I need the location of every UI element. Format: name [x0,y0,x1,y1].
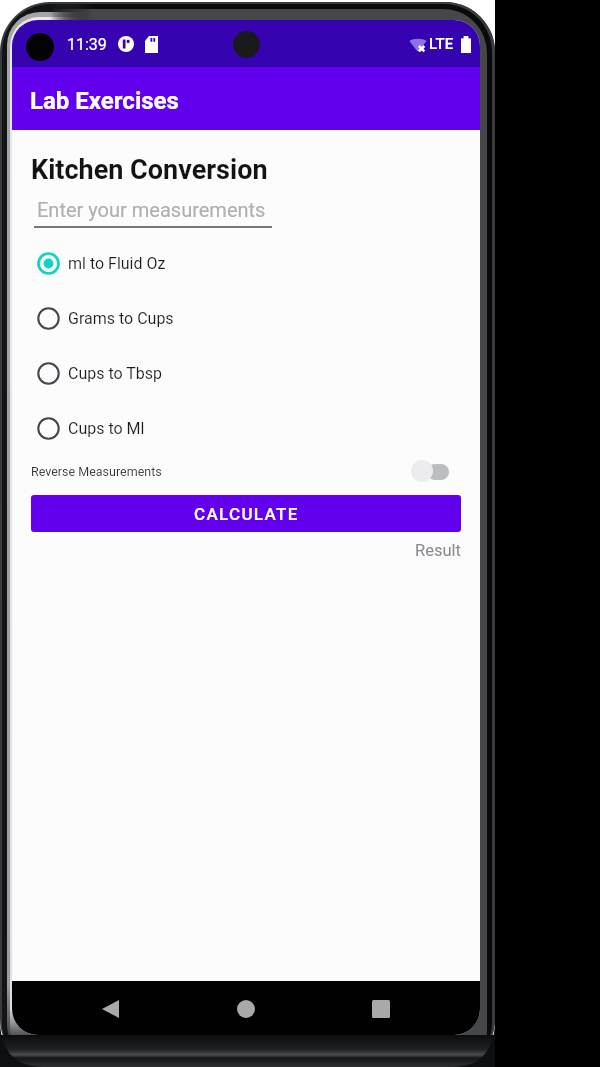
button[interactable]: Recents [358,986,404,1032]
button[interactable]: Lab Exercises [12,67,480,130]
staticText: Reverse Measurements [31,464,162,479]
button[interactable]: Reverse measurements toggle [411,459,449,483]
staticText: Result [12,541,461,560]
button[interactable]: Enter your measurements [34,198,272,228]
button[interactable]: ml to Fluid Oz [12,236,480,291]
staticText: Cups to Tbsp [68,364,163,383]
staticText: Enter your measurements [37,198,266,221]
staticText: LTE [429,35,454,53]
staticText: 11:39 [67,35,107,54]
staticText: CALCULATE [194,504,299,524]
staticText: Grams to Cups [68,309,174,328]
button[interactable]: Back [87,986,133,1032]
staticText: Cups to Ml [68,419,145,438]
staticText: Kitchen Conversion [31,154,268,186]
button[interactable]: Cups to Tbsp [12,346,480,401]
button[interactable]: CALCULATE [31,495,461,532]
staticText: Lab Exercises [30,87,179,115]
button[interactable]: Cups to Ml [12,401,480,456]
button[interactable]: Home [223,986,269,1032]
staticText: ml to Fluid Oz [68,254,166,273]
button[interactable]: Grams to Cups [12,291,480,346]
